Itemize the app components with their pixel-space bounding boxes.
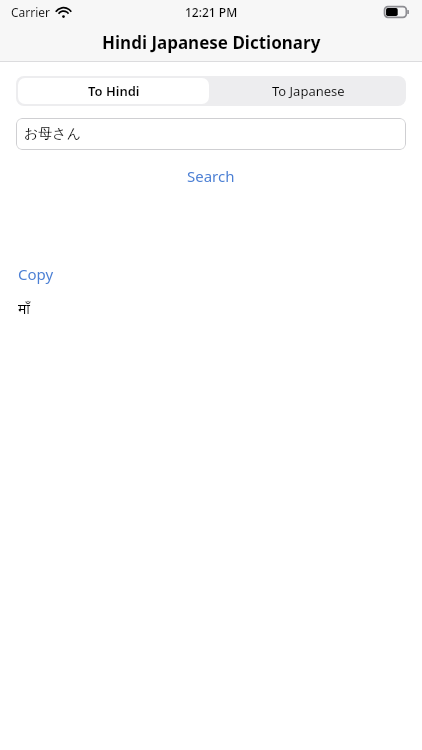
- staticText: お母さん: [24, 125, 81, 143]
- button[interactable]: To Japanese: [211, 76, 406, 106]
- other: Wi-Fi: [56, 7, 71, 18]
- staticText: To Hindi: [88, 82, 140, 100]
- staticText: To Japanese: [272, 82, 345, 100]
- staticText: 12:21 PM: [185, 4, 238, 20]
- button[interactable]: Copy: [18, 263, 54, 285]
- button[interactable]: お母さん: [16, 118, 406, 150]
- staticText: Copy: [18, 264, 54, 284]
- staticText: माँ: [18, 299, 30, 318]
- button[interactable]: Search: [0, 163, 422, 189]
- staticText: Hindi Japanese Dictionary: [102, 31, 321, 54]
- other: Battery: [384, 6, 410, 18]
- staticText: Carrier: [11, 4, 51, 20]
- staticText: Search: [187, 166, 235, 186]
- button[interactable]: To Hindi: [18, 78, 209, 104]
